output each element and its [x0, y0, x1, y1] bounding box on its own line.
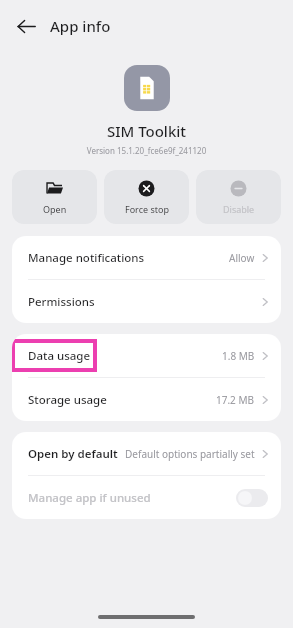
staticText: Open: [43, 203, 67, 215]
staticText: Manage app if unused: [28, 490, 151, 506]
staticText: Force stop: [125, 203, 169, 215]
staticText: Permissions: [28, 294, 95, 310]
staticText: Manage notifications: [28, 250, 145, 266]
staticText: Open by default: [28, 446, 118, 462]
staticText: 1.8 MB: [222, 349, 255, 363]
staticText: Allow: [229, 251, 255, 265]
staticText: 17.2 MB: [216, 393, 255, 407]
staticText: Disable: [223, 203, 255, 215]
button[interactable]: Data usage: [12, 334, 281, 377]
button[interactable]: Manage notifications: [12, 236, 281, 279]
button[interactable]: Manage app if unused: [12, 476, 281, 519]
button[interactable]: Back: [8, 8, 44, 44]
staticText: Data usage: [28, 348, 91, 364]
staticText: App info: [50, 16, 111, 36]
staticText: Storage usage: [28, 392, 107, 408]
button[interactable]: Permissions: [12, 280, 281, 323]
button[interactable]: Open: [12, 170, 97, 224]
staticText: SIM Toolkit: [0, 121, 293, 141]
staticText: Version 15.1.20_fce6e9f_241120: [0, 145, 293, 156]
button[interactable]: Force stop: [104, 170, 189, 224]
staticText: Default options partially set: [125, 447, 255, 461]
button[interactable]: Disable: [196, 170, 281, 224]
button[interactable]: Open by default: [12, 432, 281, 475]
button[interactable]: Storage usage: [12, 378, 281, 421]
